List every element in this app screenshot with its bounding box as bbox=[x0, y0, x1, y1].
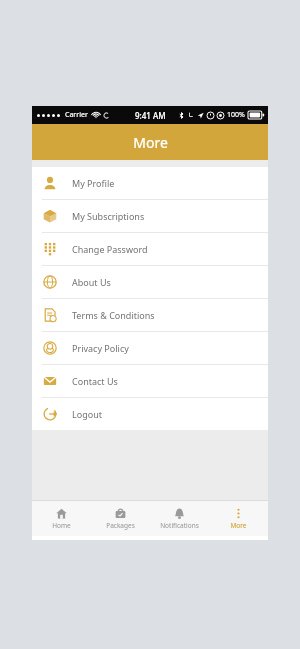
button[interactable]: Contact Us bbox=[32, 365, 268, 397]
staticText: About Us bbox=[72, 276, 111, 288]
staticText: Packages bbox=[106, 521, 135, 530]
staticText: Carrier bbox=[65, 110, 88, 120]
button[interactable]: Terms & Conditions bbox=[32, 299, 268, 331]
button[interactable]: Packages bbox=[91, 501, 150, 536]
staticText: More bbox=[230, 521, 247, 530]
staticText: Contact Us bbox=[72, 375, 118, 387]
button[interactable]: Privacy Policy bbox=[32, 332, 268, 364]
staticText: 9:41 AM bbox=[135, 110, 166, 121]
staticText: My Profile bbox=[72, 177, 115, 189]
button[interactable]: More bbox=[209, 501, 268, 536]
staticText: More bbox=[133, 133, 168, 152]
staticText: Notifications bbox=[160, 521, 199, 530]
button[interactable]: Logout bbox=[32, 398, 268, 430]
staticText: Logout bbox=[72, 408, 102, 420]
button[interactable]: Notifications bbox=[150, 501, 209, 536]
button[interactable]: My Subscriptions bbox=[32, 200, 268, 232]
staticText: My Subscriptions bbox=[72, 210, 145, 222]
button[interactable]: My Profile bbox=[32, 167, 268, 199]
staticText: Terms & Conditions bbox=[72, 309, 155, 321]
staticText: Home bbox=[52, 521, 71, 530]
staticText: Privacy Policy bbox=[72, 342, 129, 354]
staticText: 100% bbox=[227, 110, 245, 120]
button[interactable]: Change Password bbox=[32, 233, 268, 265]
button[interactable]: About Us bbox=[32, 266, 268, 298]
staticText: Change Password bbox=[72, 243, 148, 255]
button[interactable]: Home bbox=[32, 501, 91, 536]
